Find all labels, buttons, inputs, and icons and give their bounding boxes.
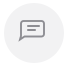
button[interactable]: Messages [0,0,68,66]
